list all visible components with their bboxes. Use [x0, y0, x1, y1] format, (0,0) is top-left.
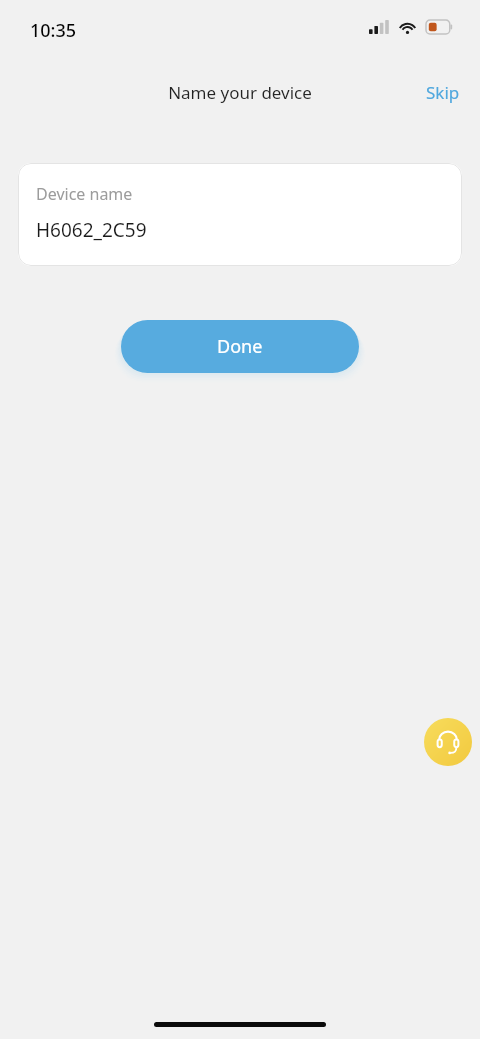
staticText: Done: [217, 334, 263, 359]
button[interactable]: Device name: [18, 163, 462, 266]
button[interactable]: Customer support: [424, 718, 472, 766]
staticText: H6062_2C59: [36, 217, 147, 243]
staticText: Skip: [426, 81, 460, 104]
staticText: Device name: [36, 183, 133, 205]
staticText: 10:35: [30, 18, 77, 43]
button[interactable]: Done: [121, 320, 359, 373]
button[interactable]: Skip: [420, 77, 466, 108]
staticText: Name your device: [168, 81, 312, 104]
